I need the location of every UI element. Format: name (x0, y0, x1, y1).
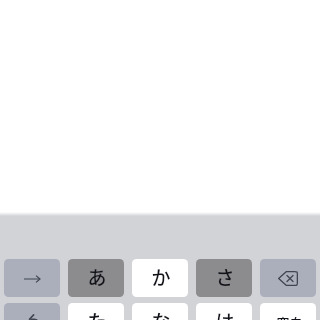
button[interactable]: あ (68, 259, 124, 297)
staticText: か (151, 263, 171, 291)
button[interactable]: Backspace (260, 259, 316, 297)
button[interactable]: た (68, 303, 124, 320)
button[interactable]: 空白 (260, 303, 316, 320)
staticText: た (87, 307, 107, 320)
button[interactable]: は (196, 303, 252, 320)
staticText: 空白 (276, 313, 303, 320)
staticText: あ (87, 263, 107, 291)
button[interactable]: Undo (4, 303, 60, 320)
staticText: な (151, 307, 171, 320)
button[interactable]: さ (196, 259, 252, 297)
button[interactable]: Next character (4, 259, 60, 297)
staticText: は (215, 307, 235, 320)
staticText: さ (215, 263, 235, 291)
button[interactable]: か (132, 259, 188, 297)
button[interactable]: な (132, 303, 188, 320)
